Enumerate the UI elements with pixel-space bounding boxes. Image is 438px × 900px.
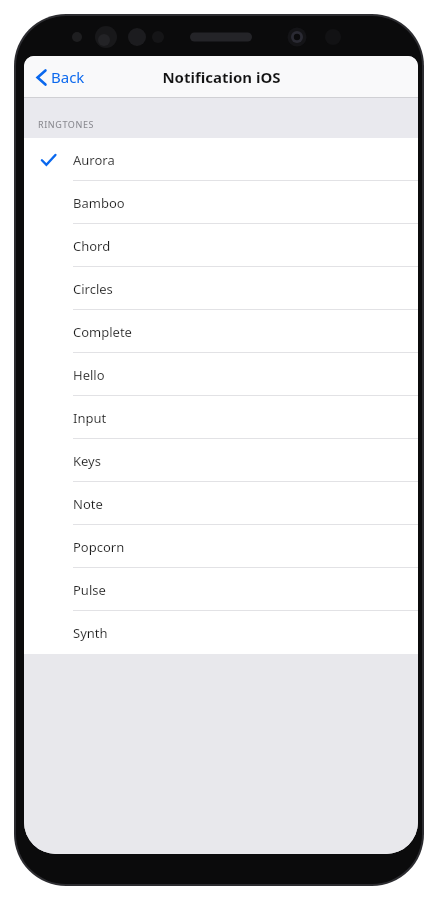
staticText: Aurora <box>73 151 115 169</box>
button[interactable]: Input <box>24 396 418 439</box>
button[interactable]: Complete <box>24 310 418 353</box>
other: Selected <box>41 154 56 166</box>
staticText: Input <box>73 409 107 427</box>
button[interactable]: Back <box>32 63 89 91</box>
staticText: Popcorn <box>73 538 125 556</box>
staticText: RINGTONES <box>38 118 95 130</box>
button[interactable]: Synth <box>24 611 418 654</box>
button[interactable]: Note <box>24 482 418 525</box>
staticText: Complete <box>73 323 132 341</box>
staticText: Hello <box>73 366 105 384</box>
staticText: Notification iOS <box>162 67 281 87</box>
button[interactable]: Bamboo <box>24 181 418 224</box>
button[interactable]: Selected <box>24 138 418 181</box>
staticText: Keys <box>73 452 101 470</box>
staticText: Bamboo <box>73 194 125 212</box>
staticText: Chord <box>73 237 111 255</box>
staticText: Pulse <box>73 581 106 599</box>
button[interactable]: Chord <box>24 224 418 267</box>
button[interactable]: Circles <box>24 267 418 310</box>
staticText: Note <box>73 495 103 513</box>
staticText: Back <box>51 67 85 87</box>
button[interactable]: Popcorn <box>24 525 418 568</box>
button[interactable]: Hello <box>24 353 418 396</box>
button[interactable]: Pulse <box>24 568 418 611</box>
button[interactable]: Keys <box>24 439 418 482</box>
staticText: Circles <box>73 280 113 298</box>
staticText: Synth <box>73 624 108 642</box>
